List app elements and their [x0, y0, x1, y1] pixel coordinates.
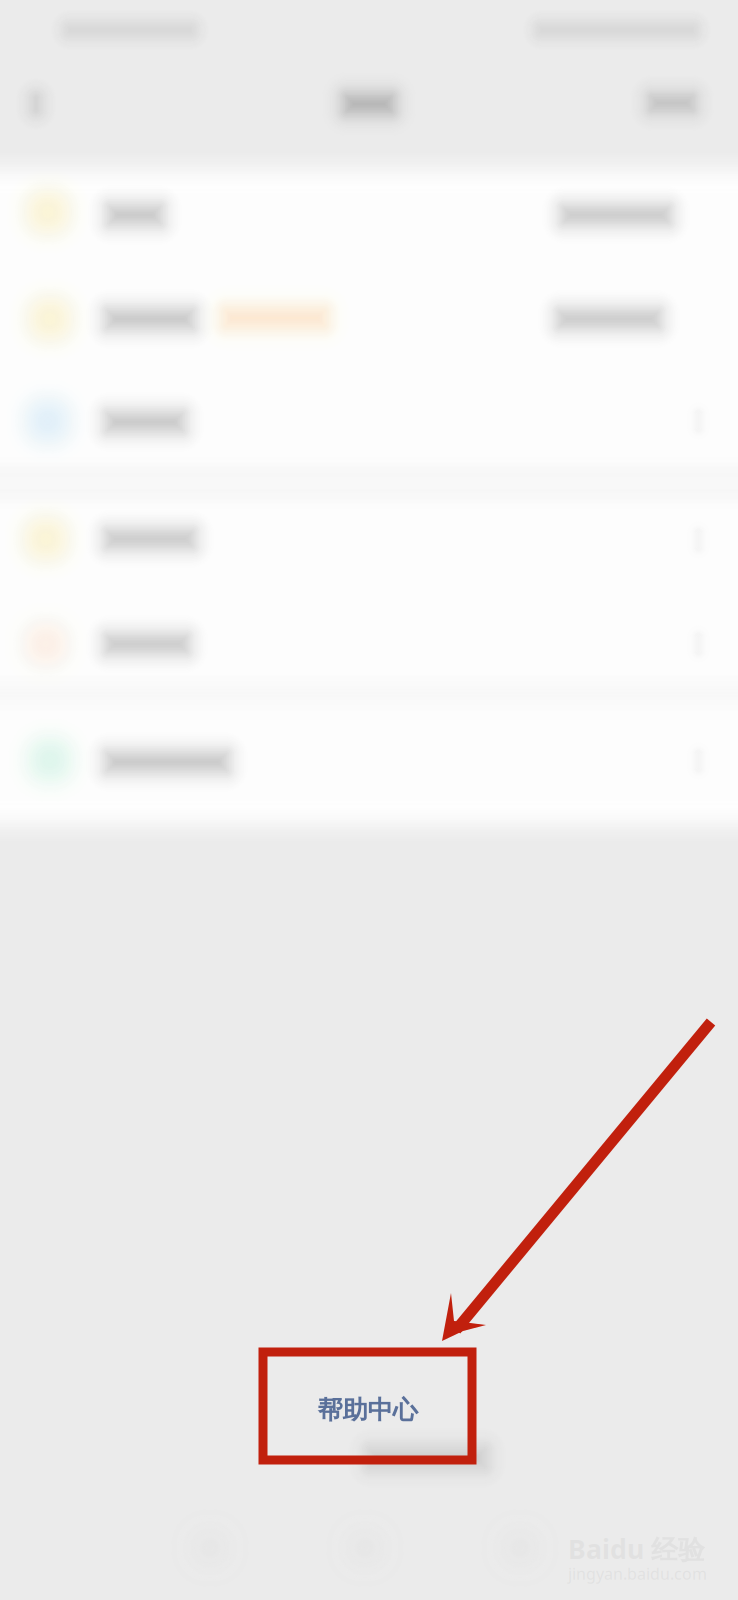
button[interactable]: Home [0, 0, 738, 1600]
button[interactable] [0, 0, 738, 1600]
button[interactable]: Edit [0, 0, 738, 1600]
button[interactable] [0, 0, 738, 1600]
button[interactable] [0, 0, 738, 1600]
button[interactable] [0, 0, 738, 1600]
staticText: Baidu 经验 [568, 1531, 705, 1567]
button[interactable] [0, 0, 738, 1600]
button[interactable]: Profile [0, 0, 738, 1600]
button[interactable] [0, 0, 738, 1600]
staticText: jingyan.baidu.com [568, 1563, 707, 1584]
button[interactable]: Back [0, 0, 738, 1600]
button[interactable]: Discover [0, 0, 738, 1600]
button[interactable] [0, 0, 738, 1600]
staticText: 帮助中心 [317, 1394, 417, 1425]
